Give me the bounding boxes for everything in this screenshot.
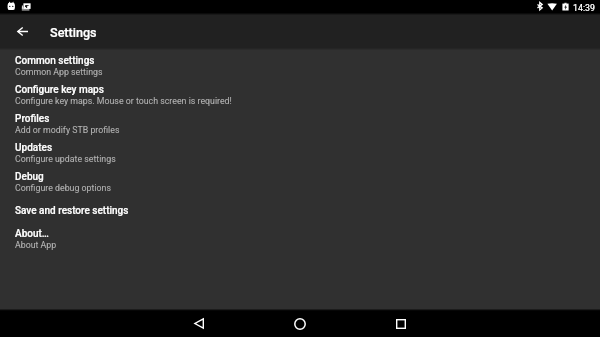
button[interactable]: Home bbox=[279, 310, 321, 337]
button[interactable]: Common settings bbox=[0, 49, 600, 78]
button[interactable]: Back bbox=[178, 310, 220, 337]
staticText: 14:39 bbox=[573, 3, 595, 13]
button[interactable]: Navigate up bbox=[6, 14, 39, 49]
staticText: Configure key maps bbox=[15, 84, 104, 96]
button[interactable]: About… bbox=[0, 222, 600, 251]
staticText: Updates bbox=[15, 142, 53, 154]
staticText: About… bbox=[15, 228, 49, 240]
staticText: Configure debug options bbox=[15, 183, 111, 193]
staticText: About App bbox=[15, 240, 57, 250]
staticText: Profiles bbox=[15, 113, 50, 125]
button[interactable]: Save and restore settings bbox=[0, 199, 600, 222]
staticText: Configure key maps. Mouse or touch scree… bbox=[15, 96, 232, 106]
staticText: Settings bbox=[50, 25, 97, 40]
staticText: Common App settings bbox=[15, 67, 103, 77]
staticText: Configure update settings bbox=[15, 154, 116, 164]
staticText: Save and restore settings bbox=[15, 205, 129, 217]
button[interactable]: Updates bbox=[0, 136, 600, 165]
button[interactable]: Profiles bbox=[0, 107, 600, 136]
button[interactable]: Configure key maps bbox=[0, 78, 600, 107]
staticText: Add or modify STB profiles bbox=[15, 125, 120, 135]
staticText: Debug bbox=[15, 171, 44, 183]
button[interactable]: Recent apps bbox=[380, 310, 422, 337]
staticText: Common settings bbox=[15, 55, 95, 67]
button[interactable]: Debug bbox=[0, 165, 600, 194]
